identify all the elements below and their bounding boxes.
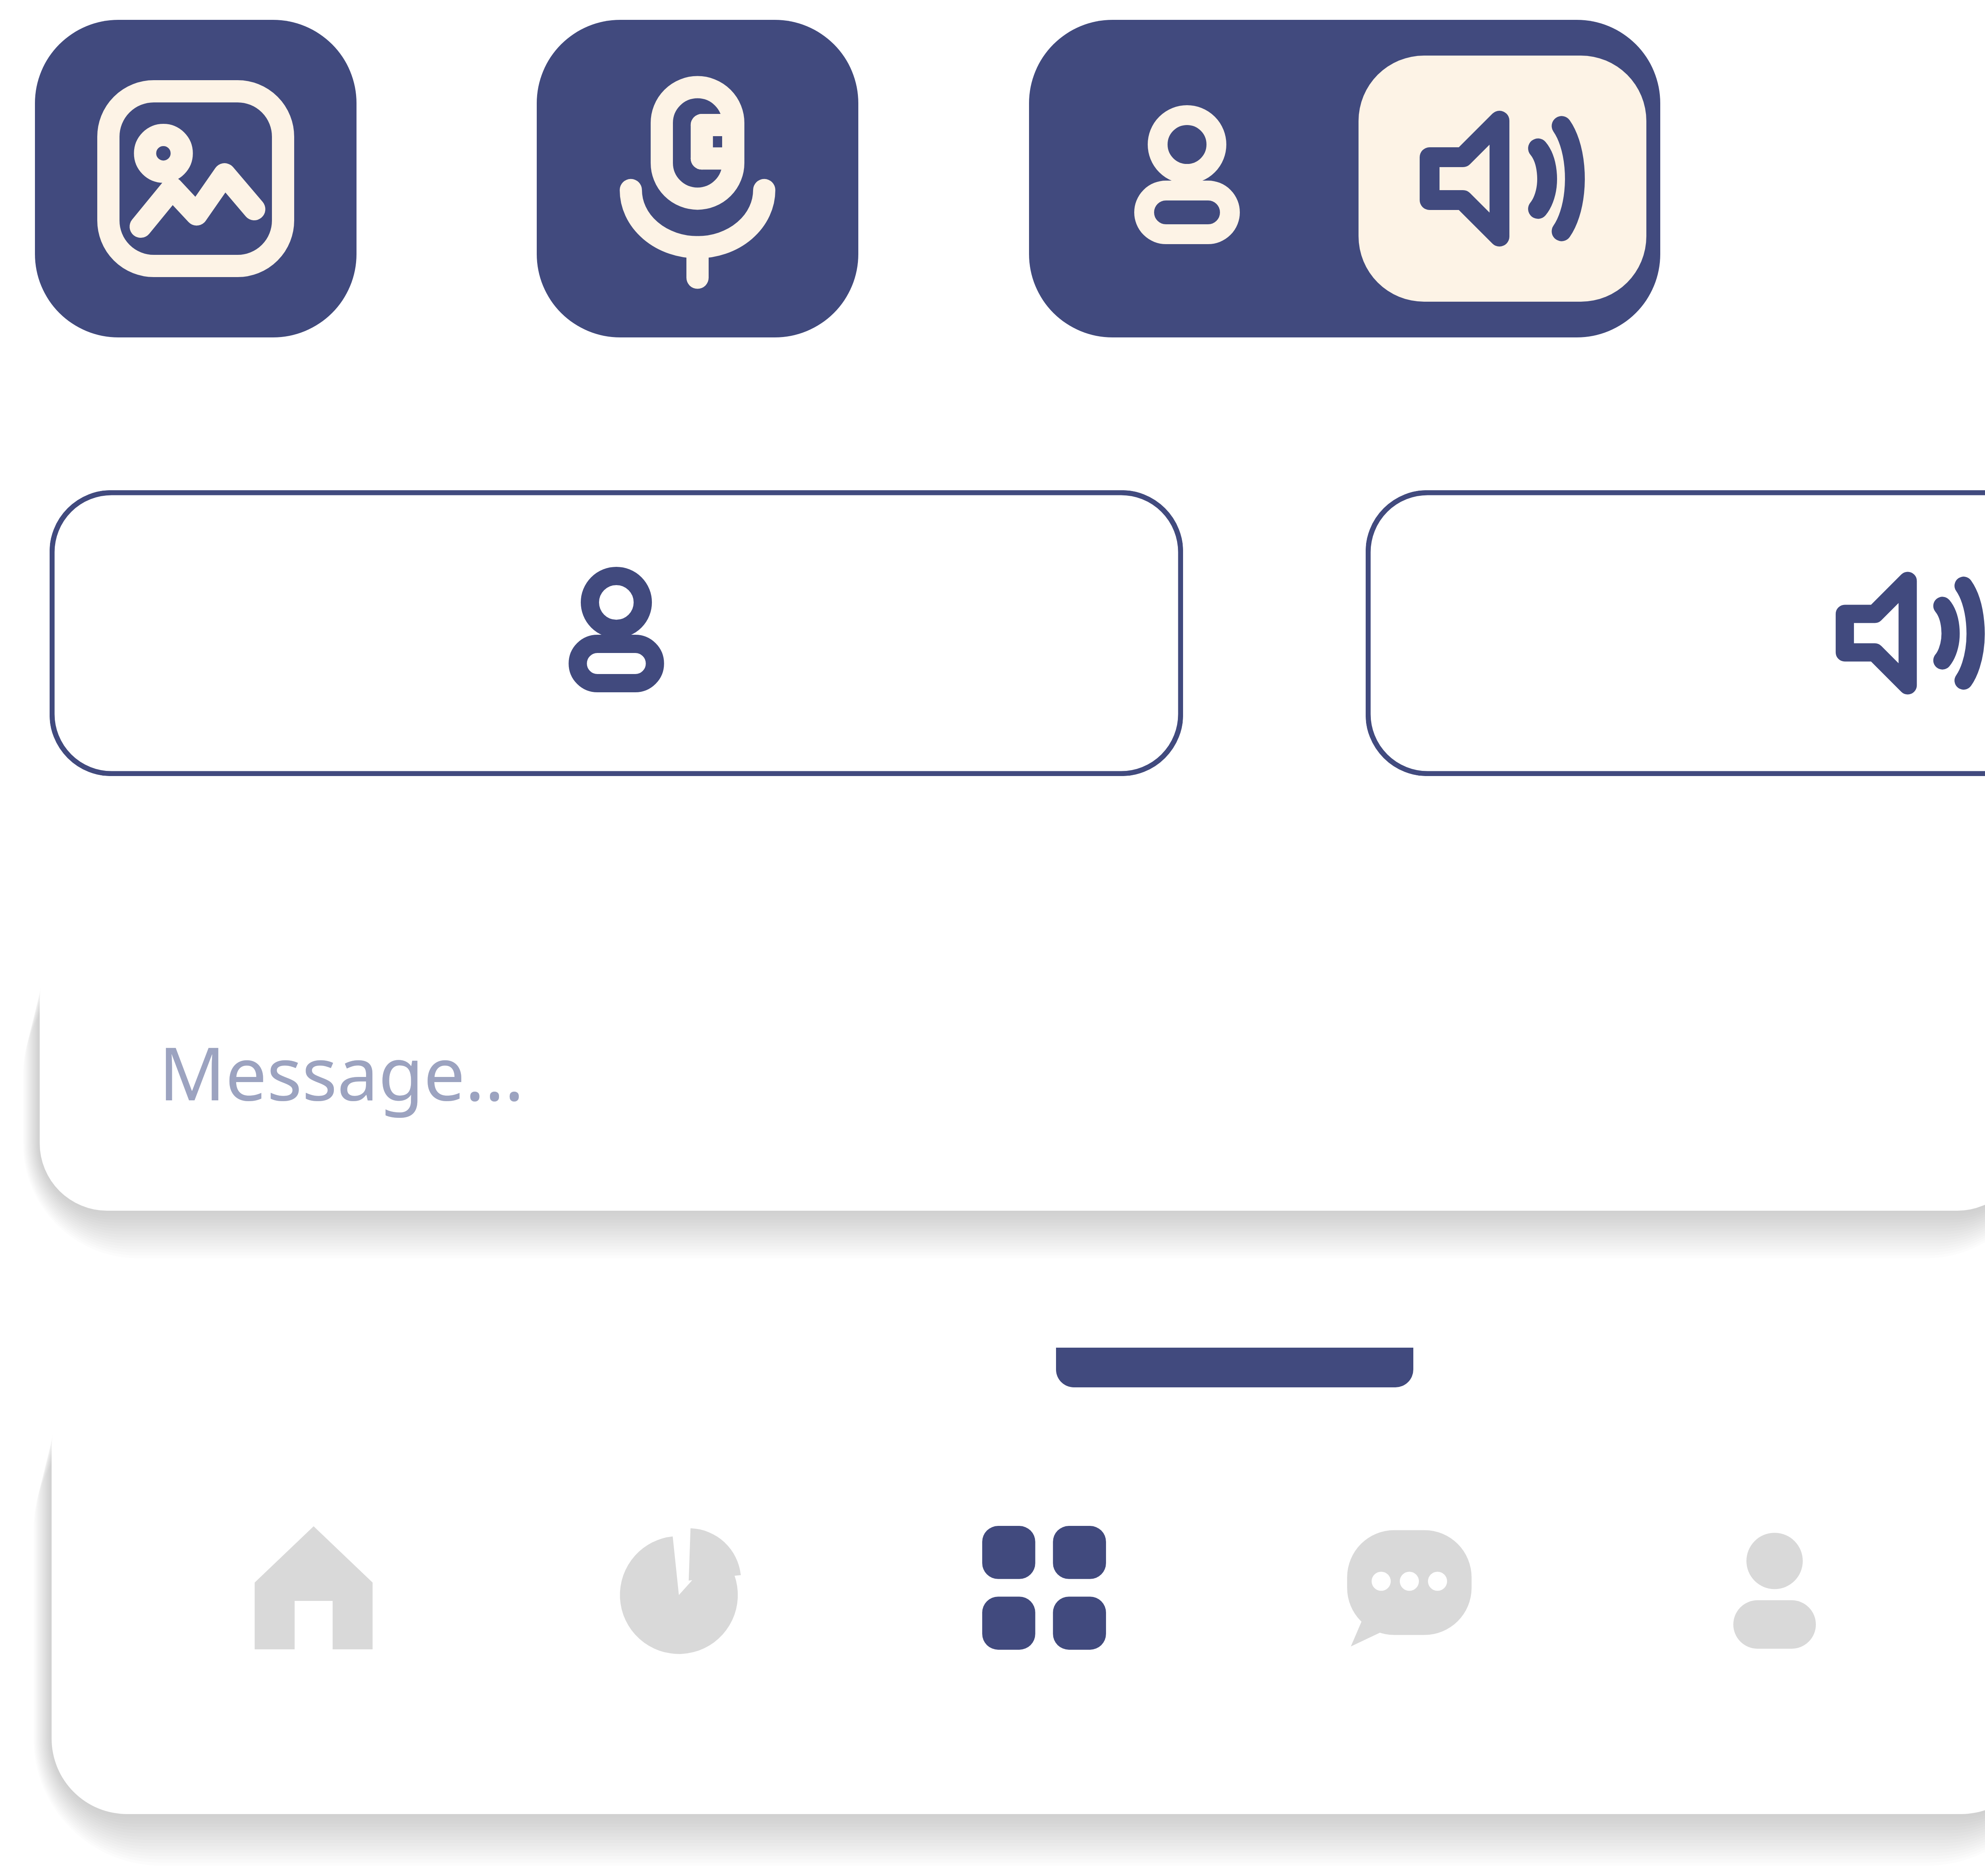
button[interactable]: Home <box>210 1485 417 1691</box>
button[interactable]: Speaker mode <box>1359 56 1646 302</box>
button[interactable]: Messages <box>1306 1485 1513 1691</box>
button[interactable]: Profile <box>1671 1485 1878 1691</box>
button[interactable]: Apps <box>941 1485 1147 1691</box>
button[interactable]: Record voice <box>537 20 858 337</box>
button[interactable]: Message... <box>40 933 1985 1211</box>
staticText: Message... <box>159 1022 524 1122</box>
button[interactable]: Person mode <box>1029 20 1345 337</box>
button[interactable]: Statistics <box>576 1485 782 1691</box>
button[interactable]: Attach image <box>35 20 357 337</box>
button[interactable]: Person <box>50 490 1183 776</box>
button[interactable]: Sound <box>1366 490 1985 776</box>
